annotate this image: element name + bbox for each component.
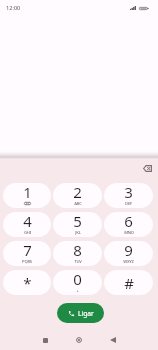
staticText: WXYZ — [123, 259, 134, 265]
button[interactable]: 5 — [53, 212, 102, 237]
button[interactable]: Back — [103, 330, 123, 350]
button[interactable]: * — [3, 270, 51, 295]
staticText: JKL — [75, 230, 81, 236]
button[interactable]: 2 — [53, 183, 102, 208]
button[interactable]: 8 — [53, 241, 102, 266]
button[interactable]: Recent apps — [35, 330, 55, 350]
staticText: DEF — [125, 201, 132, 207]
staticText: 3 — [124, 183, 133, 202]
staticText: 1 — [23, 183, 32, 202]
button[interactable]: # — [104, 270, 153, 295]
staticText: 4 — [23, 212, 32, 231]
button[interactable]: 6 — [104, 212, 153, 237]
staticText: Ligar — [78, 309, 94, 318]
button[interactable]: Home — [69, 330, 89, 350]
button[interactable]: Ligar — [57, 303, 104, 323]
staticText: 0 — [73, 270, 82, 289]
staticText: 8 — [73, 241, 82, 260]
staticText: 9 — [124, 241, 133, 260]
button[interactable]: 9 — [104, 241, 153, 266]
staticText: ABC — [74, 201, 82, 207]
staticText: # — [124, 273, 134, 293]
staticText: 5 — [73, 212, 82, 231]
button[interactable]: 3 — [104, 183, 153, 208]
staticText: + — [76, 288, 79, 294]
staticText: 7 — [23, 241, 32, 260]
staticText: PQRS — [22, 259, 32, 265]
staticText: 12:00 — [6, 4, 21, 12]
button[interactable]: 1 — [3, 183, 51, 208]
staticText: TUV — [74, 259, 82, 265]
staticText: 2 — [73, 183, 82, 202]
button[interactable]: 7 — [3, 241, 51, 266]
button[interactable]: Backspace — [139, 160, 155, 176]
button[interactable]: 0 — [53, 270, 102, 295]
button[interactable]: 4 — [3, 212, 51, 237]
staticText: GHI — [24, 230, 31, 236]
staticText: MNO — [124, 230, 134, 236]
staticText: * — [23, 273, 32, 293]
staticText: 6 — [124, 212, 133, 231]
